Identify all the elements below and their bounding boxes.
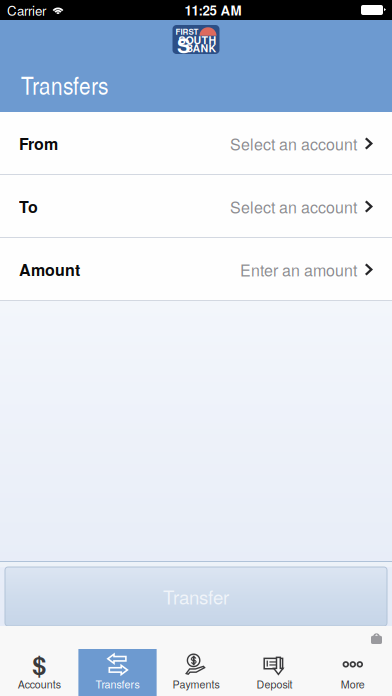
button[interactable]: From — [0, 112, 392, 175]
staticText: Accounts — [18, 676, 61, 692]
button[interactable]: $ — [0, 649, 78, 696]
staticText: From — [19, 132, 58, 155]
button[interactable]: Transfer — [5, 567, 387, 626]
staticText: Carrier — [7, 0, 46, 20]
staticText: Select an account — [230, 195, 357, 218]
staticText: Enter an amount — [240, 258, 357, 281]
staticText: 11:25 AM — [184, 0, 241, 20]
staticText: SOUTH — [178, 32, 216, 48]
staticText: FIRST — [175, 26, 198, 37]
button[interactable]: Amount — [0, 238, 392, 301]
staticText: Transfers — [96, 676, 140, 692]
staticText: Payments — [172, 676, 219, 692]
staticText: BANK — [185, 40, 216, 56]
staticText: $ — [32, 646, 46, 682]
button[interactable]: Transfers — [78, 649, 157, 696]
staticText: Transfers — [21, 67, 108, 102]
staticText: Transfer — [163, 583, 229, 610]
staticText: To — [19, 195, 38, 218]
staticText: S — [177, 31, 190, 59]
staticText: Amount — [19, 258, 80, 281]
button[interactable]: More — [314, 649, 392, 696]
button[interactable]: To — [0, 175, 392, 238]
staticText: More — [341, 676, 365, 692]
staticText: Select an account — [230, 132, 357, 155]
button[interactable]: Payments — [157, 649, 235, 696]
staticText: Deposit — [256, 676, 292, 692]
button[interactable]: Deposit — [235, 649, 314, 696]
